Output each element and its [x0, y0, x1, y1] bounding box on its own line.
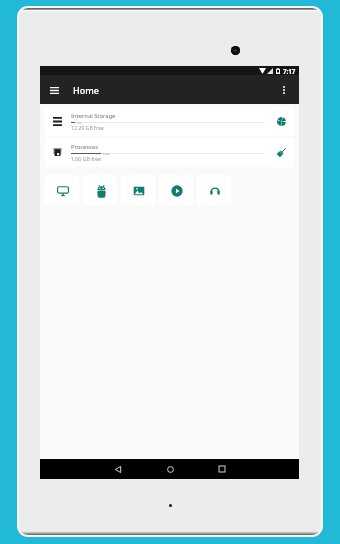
button[interactable]: Internal Storage [45, 107, 294, 136]
staticText: 7:17 [283, 67, 296, 75]
button[interactable]: Recent apps [196, 459, 248, 479]
staticText: 1% [76, 121, 82, 124]
button[interactable]: Back [92, 459, 144, 479]
button[interactable]: Navigation menu [44, 80, 64, 100]
button[interactable]: Home [144, 459, 196, 479]
staticText: Internal Storage [71, 112, 116, 120]
staticText: 1.66 GB free [71, 155, 101, 162]
button[interactable]: Screen [45, 175, 79, 205]
staticText: 12.29 GB free [71, 124, 104, 131]
button[interactable]: More options [274, 80, 294, 100]
staticText: Home [73, 84, 99, 96]
button[interactable]: Apps [83, 175, 117, 205]
button[interactable]: Videos [159, 175, 193, 205]
button[interactable]: Processes [45, 138, 294, 167]
button[interactable]: Music [197, 175, 231, 205]
staticText: 18% [102, 152, 111, 155]
button[interactable]: Gallery [121, 175, 155, 205]
staticText: Processes [71, 143, 98, 151]
